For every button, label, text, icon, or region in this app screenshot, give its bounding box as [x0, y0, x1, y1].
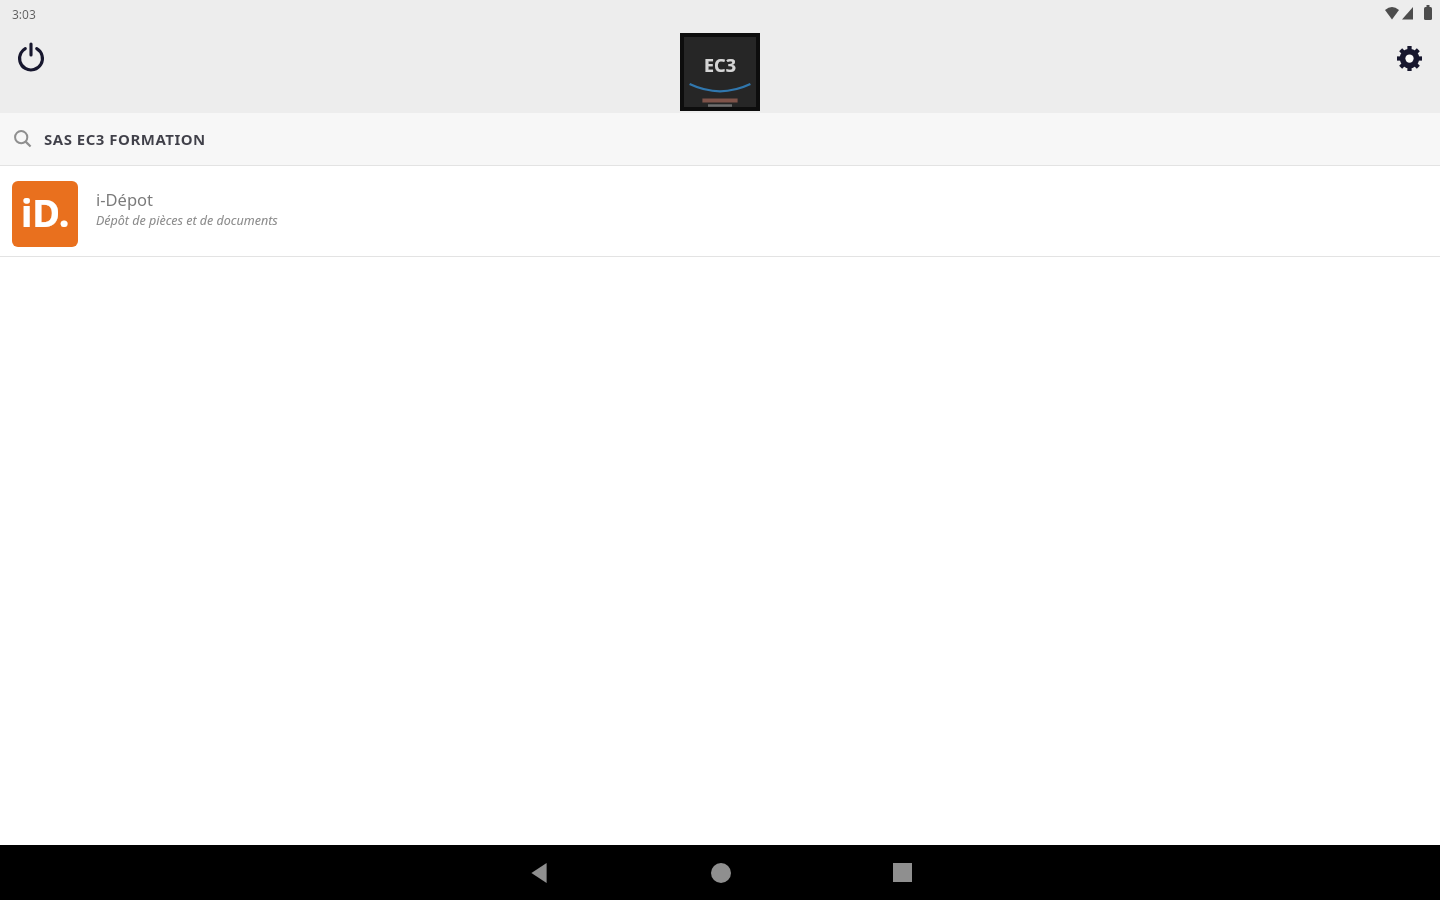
button[interactable]: EC3 [680, 33, 760, 111]
button[interactable] [511, 845, 566, 900]
staticText: Dépôt de pièces et de documents [96, 212, 278, 229]
button[interactable] [1386, 35, 1432, 81]
staticText: 3:03 [12, 6, 36, 22]
staticText: i-Dépot [96, 188, 154, 210]
button[interactable] [875, 845, 930, 900]
button[interactable]: iD. [0, 166, 1440, 256]
staticText: iD. [21, 186, 70, 238]
staticText: EC3 [704, 53, 736, 78]
button[interactable] [693, 845, 748, 900]
button[interactable]: SAS EC3 FORMATION [0, 113, 1440, 165]
staticText: SAS EC3 FORMATION [44, 129, 206, 149]
button[interactable] [8, 34, 54, 80]
